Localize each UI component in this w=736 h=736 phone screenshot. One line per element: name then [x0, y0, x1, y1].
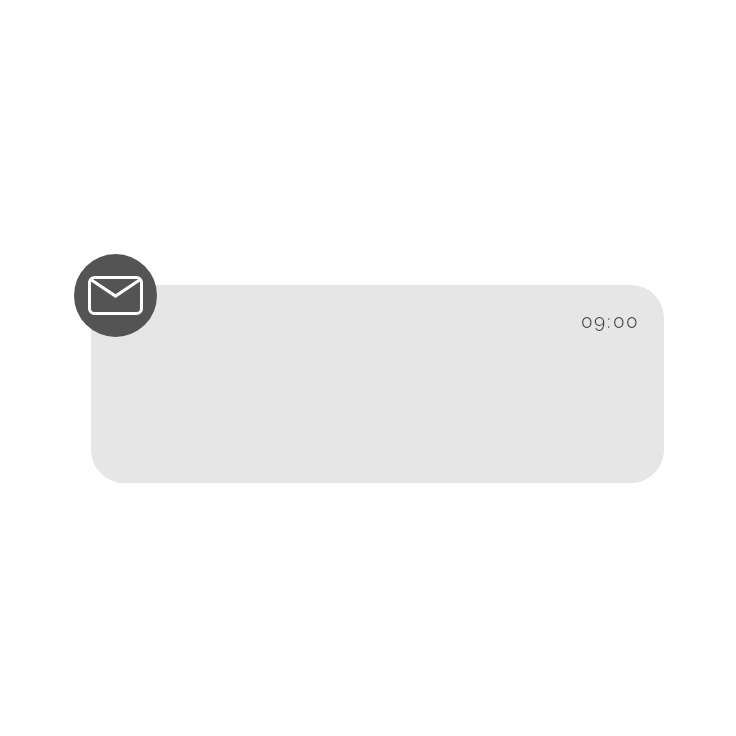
button[interactable]: Mail: [74, 254, 157, 337]
other: 09:00: [580, 307, 636, 335]
button[interactable]: 09:00: [91, 285, 664, 483]
